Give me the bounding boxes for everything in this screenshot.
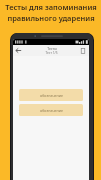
- button[interactable]: Back: [14, 46, 23, 55]
- staticText: Тесты для запоминания: [5, 2, 97, 12]
- button[interactable]: обозначение: [19, 104, 83, 116]
- staticText: обозначение: [40, 108, 63, 113]
- button[interactable]: Notes: [79, 47, 87, 55]
- staticText: Тест 1/5: [45, 51, 58, 55]
- staticText: Тесты: [47, 46, 57, 51]
- staticText: правильного ударения: [7, 13, 95, 23]
- button[interactable]: обозначение: [19, 89, 83, 101]
- staticText: обозначение: [40, 93, 63, 98]
